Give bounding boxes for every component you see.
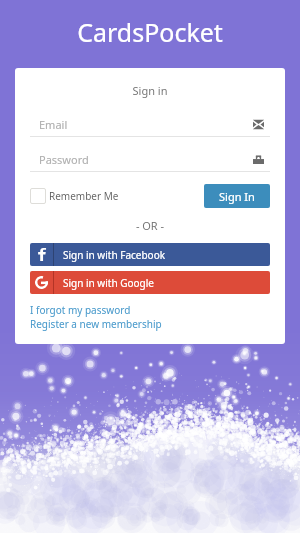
staticText: Sign in with Google bbox=[63, 276, 154, 290]
staticText: - OR - bbox=[15, 218, 285, 233]
button[interactable]: Sign In bbox=[204, 184, 270, 208]
staticText: Sign in with Facebook bbox=[63, 248, 166, 262]
button[interactable]: Sign in with Facebook bbox=[30, 243, 270, 266]
button[interactable]: Password bbox=[30, 153, 270, 172]
staticText: Email bbox=[39, 117, 68, 132]
staticText: Sign in bbox=[15, 83, 285, 98]
button[interactable]: Email bbox=[30, 118, 270, 137]
staticText: Remember Me bbox=[49, 189, 119, 203]
button[interactable]: Sign in with Google bbox=[30, 271, 270, 294]
button[interactable]: Register a new membership bbox=[30, 317, 162, 331]
button[interactable]: I forgot my password bbox=[30, 303, 131, 317]
staticText: Password bbox=[39, 152, 89, 167]
staticText: Sign In bbox=[219, 189, 255, 204]
staticText: CardsPocket bbox=[0, 15, 300, 49]
button[interactable]: Remember Me bbox=[30, 184, 119, 208]
